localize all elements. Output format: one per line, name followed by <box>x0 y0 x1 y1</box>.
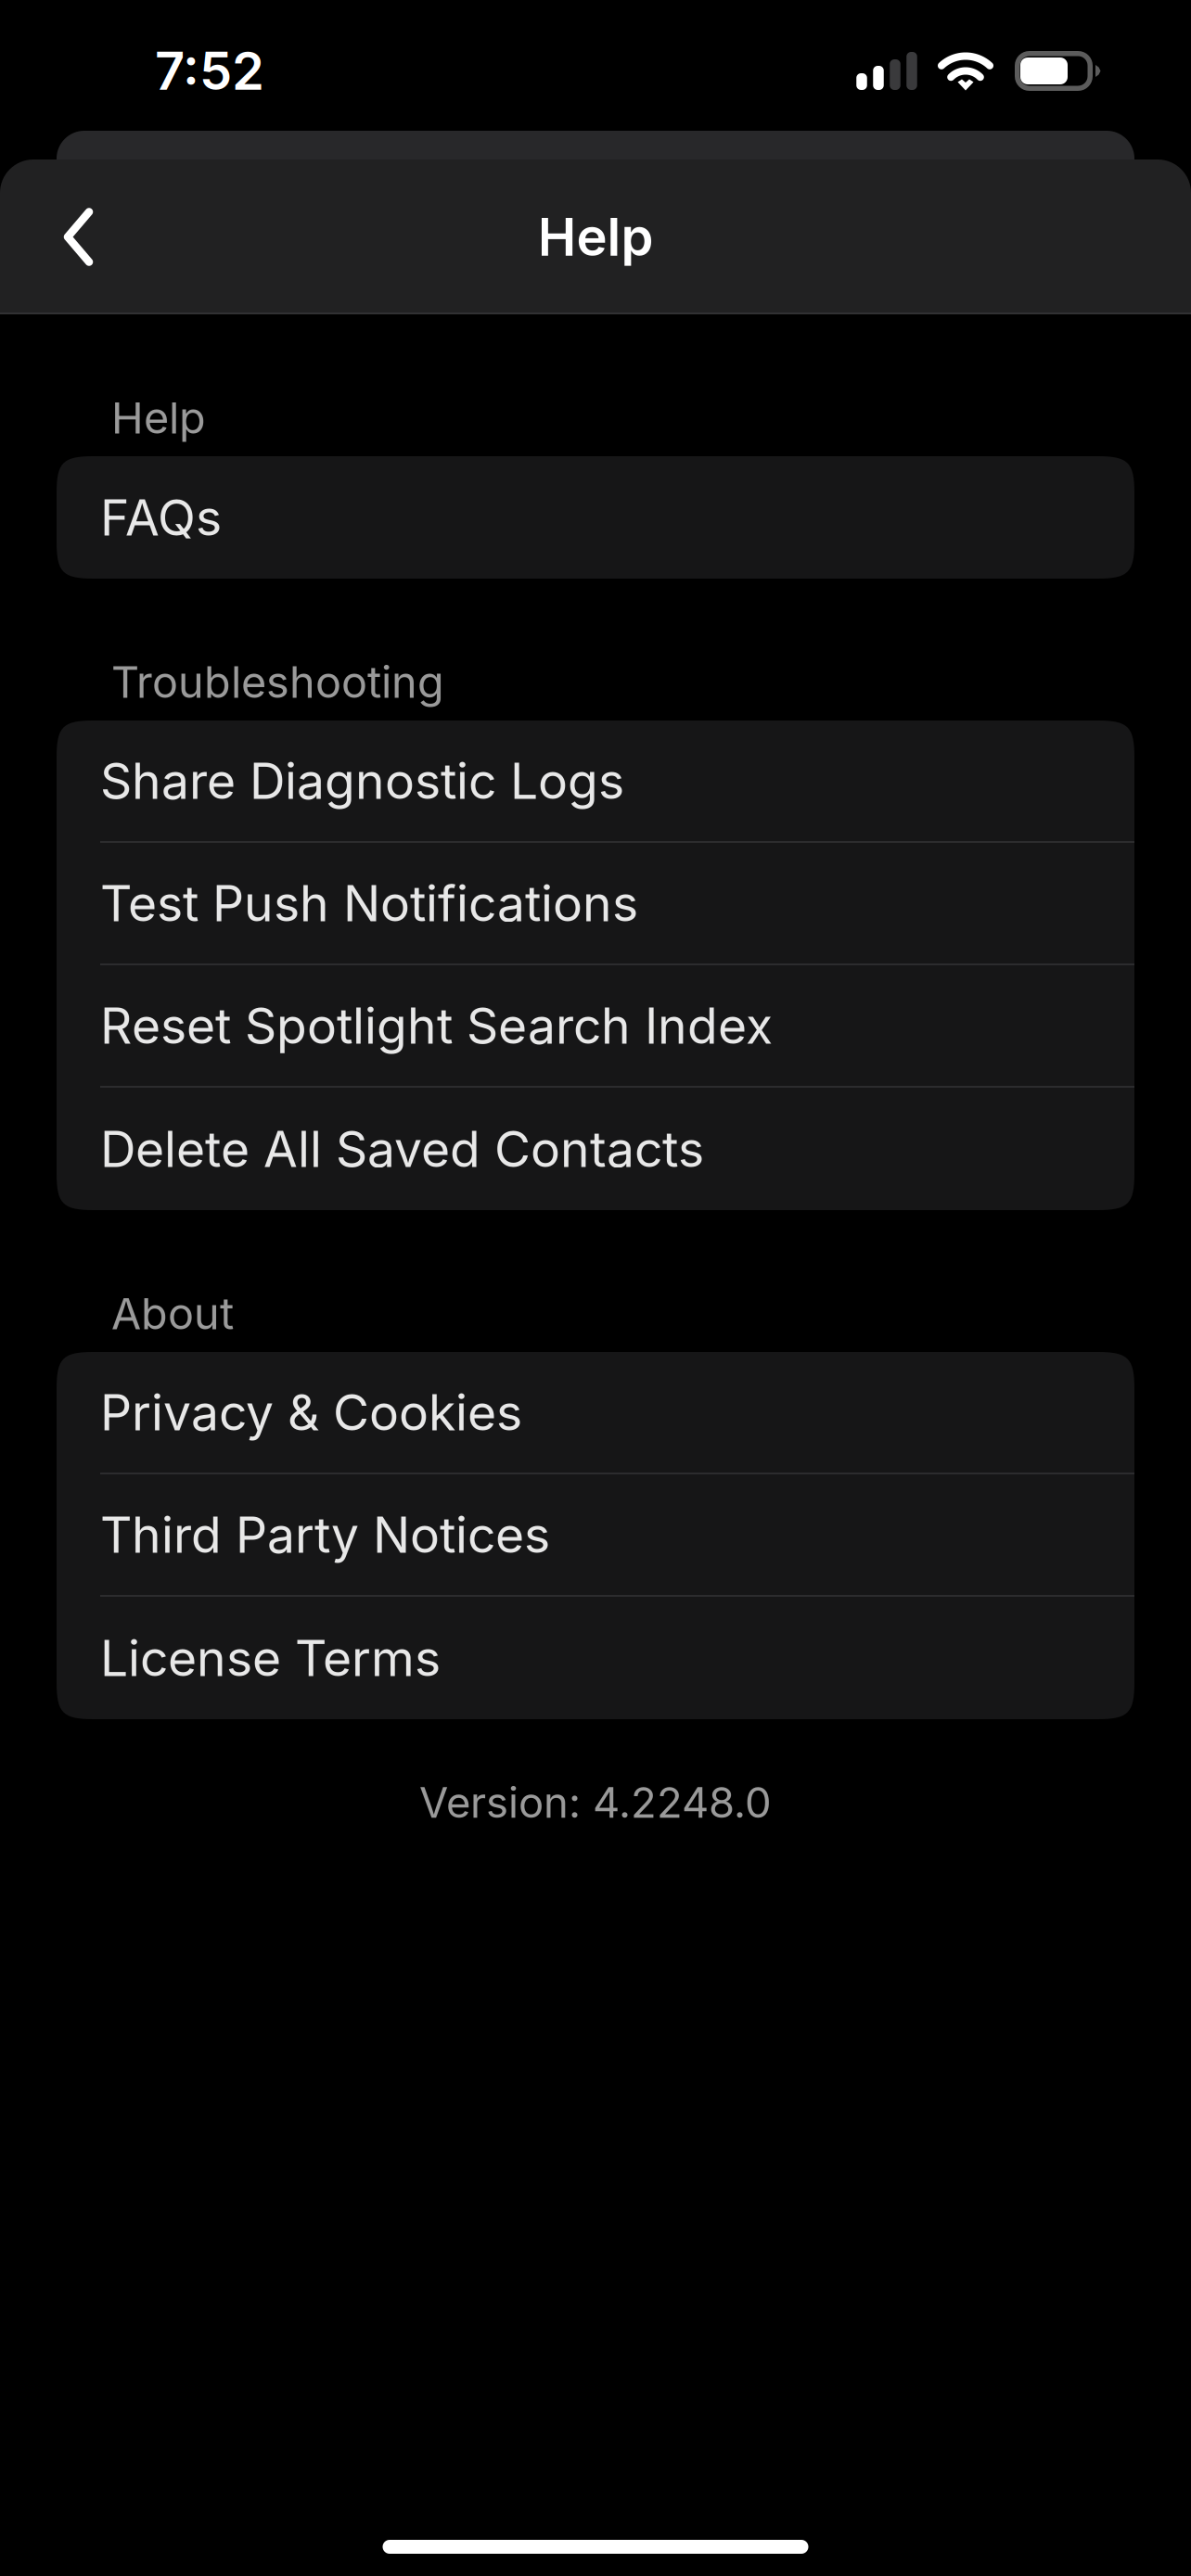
button[interactable]: Delete All Saved Contacts <box>57 1088 1134 1210</box>
staticText: Troubleshooting <box>111 657 444 708</box>
staticText: Third Party Notices <box>100 1505 550 1564</box>
staticText: Reset Spotlight Search Index <box>100 996 773 1055</box>
staticText: Share Diagnostic Logs <box>100 752 624 810</box>
button[interactable]: Test Push Notifications <box>57 843 1134 965</box>
staticText: 7:52 <box>155 40 264 102</box>
staticText: Help <box>111 392 206 443</box>
button[interactable]: Back <box>18 159 140 314</box>
button[interactable]: FAQs <box>57 456 1134 579</box>
button[interactable]: License Terms <box>57 1597 1134 1719</box>
button[interactable]: Reset Spotlight Search Index <box>57 965 1134 1088</box>
button[interactable]: Share Diagnostic Logs <box>57 721 1134 843</box>
staticText: Help <box>538 206 653 268</box>
staticText: Test Push Notifications <box>100 874 638 932</box>
staticText: About <box>111 1288 234 1339</box>
staticText: Delete All Saved Contacts <box>100 1120 704 1178</box>
staticText: Version: 4.2248.0 <box>419 1778 772 1827</box>
staticText: Privacy & Cookies <box>100 1383 522 1441</box>
staticText: License Terms <box>100 1629 441 1687</box>
button[interactable]: Third Party Notices <box>57 1474 1134 1597</box>
button[interactable]: Privacy & Cookies <box>57 1352 1134 1474</box>
staticText: FAQs <box>100 488 222 547</box>
